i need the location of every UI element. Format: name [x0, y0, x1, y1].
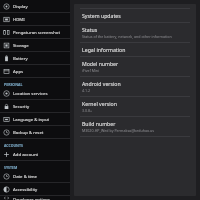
button[interactable]: Build number	[74, 117, 196, 136]
staticText: Model number	[82, 60, 119, 67]
button[interactable]: Legal information	[74, 43, 196, 56]
staticText: HDMI	[13, 16, 25, 22]
staticText: Build number	[82, 120, 116, 127]
staticText: Developer options	[13, 196, 50, 200]
button[interactable]: Language & input	[0, 113, 70, 125]
button[interactable]: System updates	[74, 9, 196, 22]
staticText: Language & input	[13, 116, 50, 122]
staticText: Pengaturan screenshot	[13, 29, 60, 35]
staticText: Kernel version	[82, 100, 117, 107]
button[interactable]: Pengaturan screenshot	[0, 26, 70, 38]
button[interactable]: Date & time	[0, 170, 70, 182]
staticText: System updates	[82, 12, 121, 19]
button[interactable]: Display	[0, 0, 70, 12]
button[interactable]: Add account	[0, 148, 70, 160]
staticText: Location services	[13, 90, 48, 96]
staticText: SYSTEM	[4, 165, 18, 170]
staticText: Status of the battery, network, and othe…	[82, 34, 172, 39]
button[interactable]: HDMI	[0, 13, 70, 25]
staticText: Date & time	[13, 173, 38, 179]
staticText: Accessibility	[13, 186, 38, 192]
button[interactable]: Apps	[0, 65, 70, 77]
staticText: Backup & reset	[13, 129, 44, 135]
button[interactable]: Location services	[0, 87, 70, 99]
staticText: Battery	[13, 55, 28, 61]
staticText: M3020-HP_Wed by Permaksa@keduhao.us	[82, 128, 155, 133]
button[interactable]: Accessibility	[0, 183, 70, 195]
staticText: 4.1.2	[82, 88, 91, 93]
staticText: Security	[13, 103, 30, 109]
staticText: Apps	[13, 68, 24, 74]
button[interactable]: Storage	[0, 39, 70, 51]
button[interactable]: Security	[0, 100, 70, 112]
button[interactable]: Model number	[74, 57, 196, 76]
button[interactable]: Developer options	[0, 196, 70, 200]
staticText: Display	[13, 3, 28, 9]
button[interactable]: Kernel version	[74, 97, 196, 116]
staticText: iFive1Mini	[82, 68, 99, 73]
staticText: Status	[82, 26, 98, 33]
button[interactable]: Status	[74, 23, 196, 42]
button[interactable]: Battery	[0, 52, 70, 64]
staticText: Android version	[82, 80, 121, 87]
staticText: 3.0.8+	[82, 108, 93, 113]
staticText: ACCOUNTS	[4, 143, 23, 148]
staticText: Legal information	[82, 46, 126, 53]
staticText: Add account	[13, 151, 39, 157]
button[interactable]: Android version	[74, 77, 196, 96]
staticText: Storage	[13, 42, 29, 48]
button[interactable]: Backup & reset	[0, 126, 70, 138]
staticText: PERSONAL	[4, 82, 23, 87]
